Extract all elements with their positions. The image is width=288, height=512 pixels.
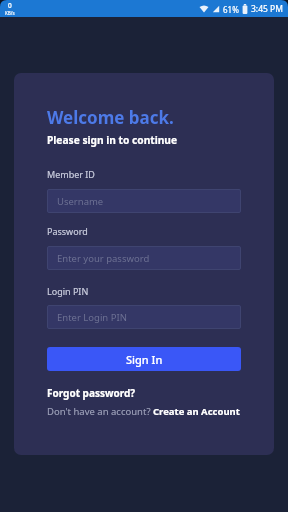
button[interactable]: Forgot password? [47, 386, 136, 400]
staticText: 3:45 PM [251, 3, 283, 15]
staticText: Please sign in to continue [47, 133, 178, 147]
staticText: 0 [8, 1, 12, 10]
staticText: Welcome back. [47, 106, 174, 129]
staticText: Enter Login PIN [57, 311, 127, 324]
staticText: 61% [223, 4, 239, 15]
staticText: Enter your password [57, 252, 150, 265]
button[interactable]: Enter Login PIN [47, 305, 241, 329]
staticText: Username [57, 195, 104, 208]
staticText: Member ID [47, 168, 95, 180]
button[interactable]: Create an Account [153, 405, 240, 418]
button[interactable]: Username [47, 189, 241, 213]
button[interactable]: Enter your password [47, 246, 241, 270]
staticText: Don't have an account? [47, 405, 153, 418]
staticText: Login PIN [47, 285, 89, 297]
button[interactable]: Sign In [47, 347, 241, 371]
staticText: KB/s [5, 10, 15, 16]
staticText: Password [47, 225, 88, 237]
staticText: Sign In [126, 352, 163, 367]
